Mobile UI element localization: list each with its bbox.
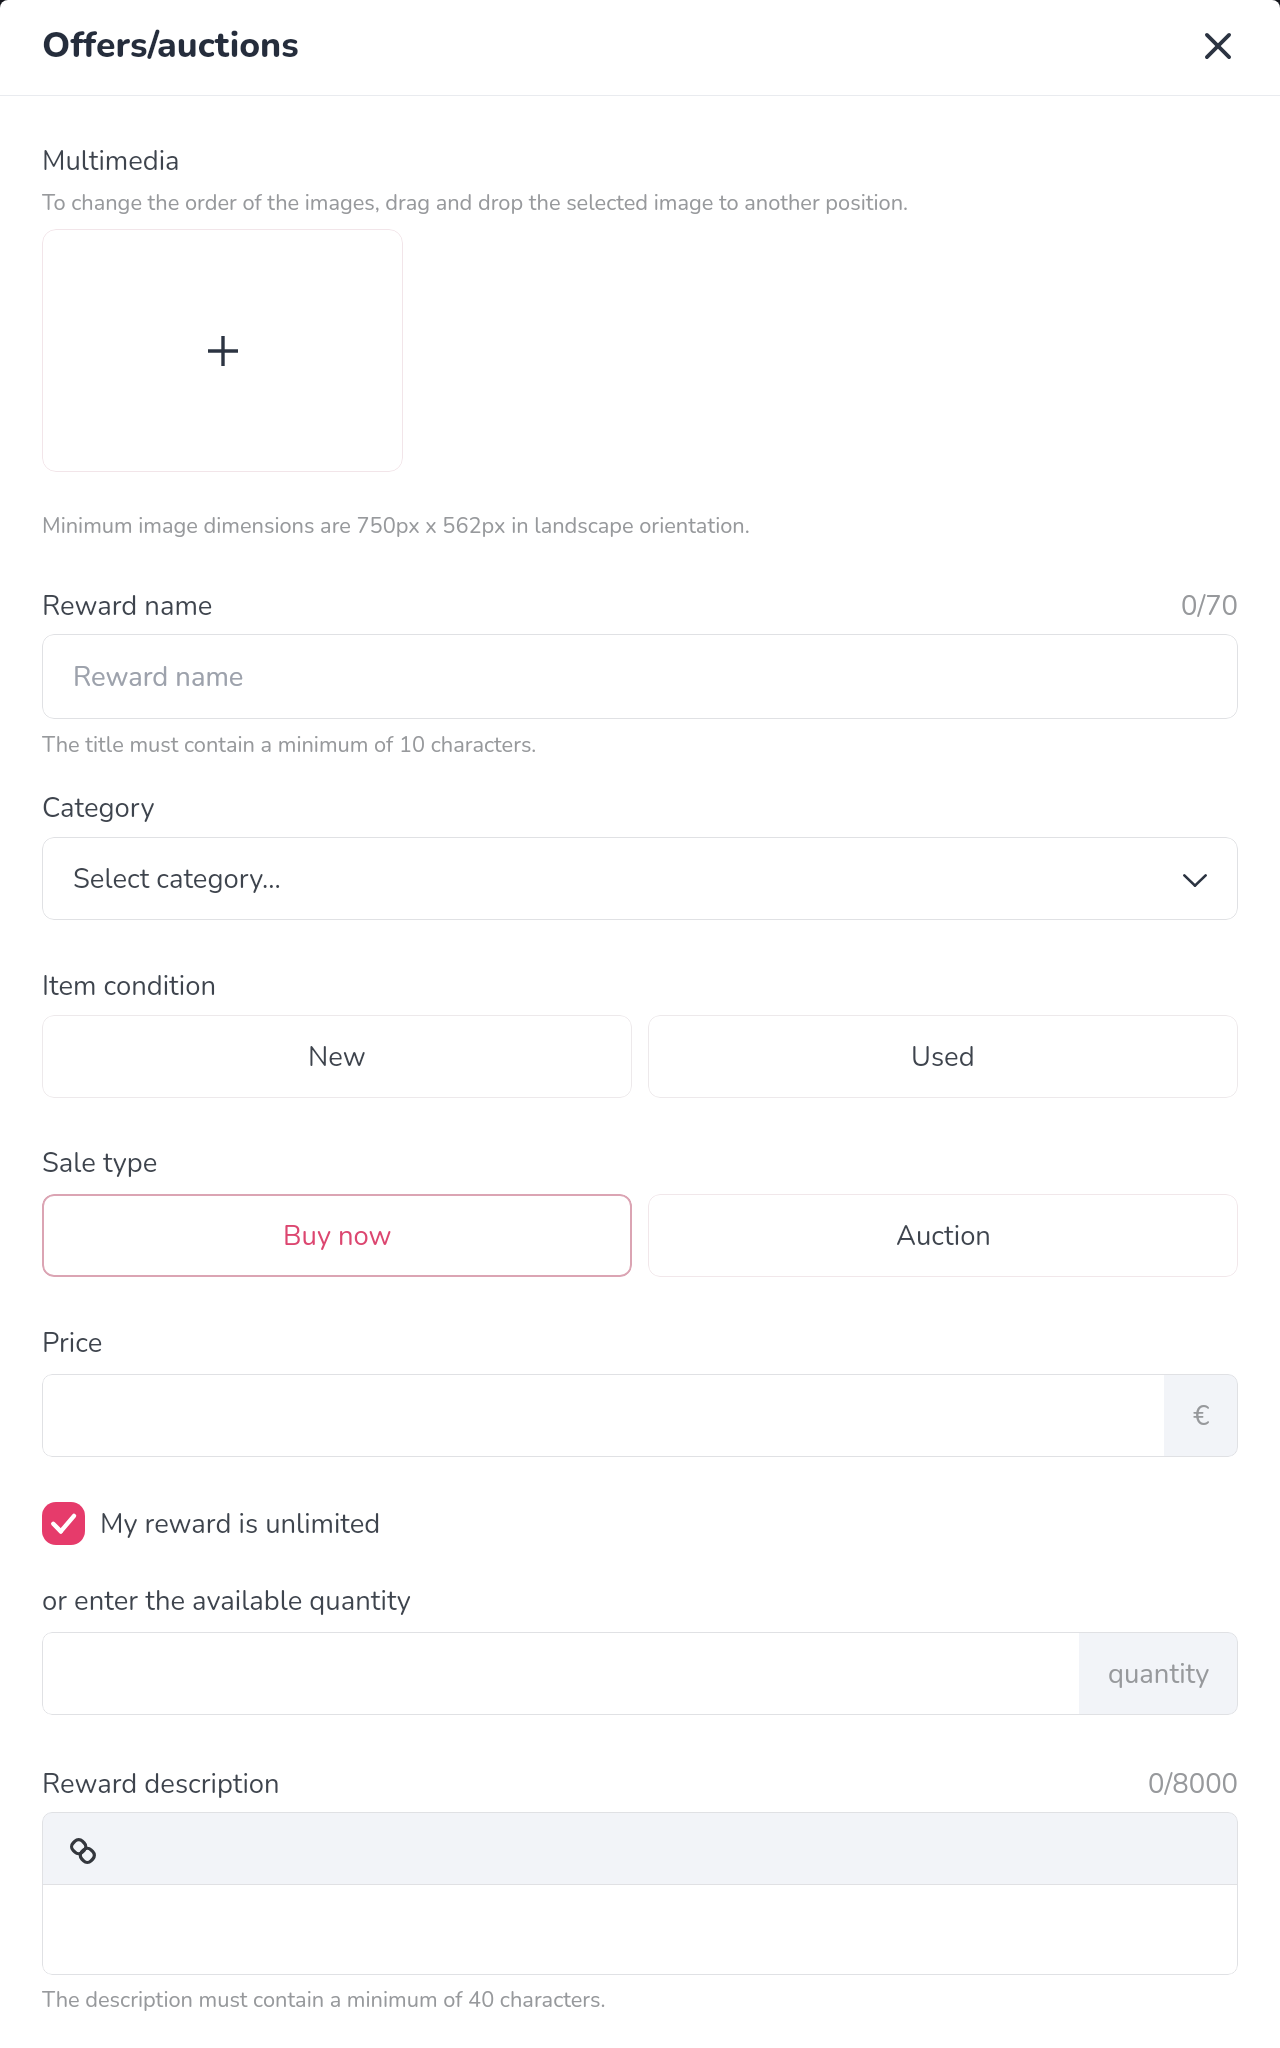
button[interactable] (42, 1885, 1238, 1975)
staticText: Buy now (283, 1217, 392, 1254)
staticText: Minimum image dimensions are 750px x 562… (42, 511, 750, 541)
staticText: 0/70 (42, 587, 1238, 624)
button[interactable]: Used (648, 1015, 1238, 1098)
staticText: Reward name (42, 587, 213, 624)
button[interactable]: Reward name (42, 634, 1238, 719)
staticText: Select category... (73, 860, 281, 897)
button[interactable]: Insert link (66, 1834, 100, 1868)
staticText: New (308, 1038, 366, 1075)
staticText: My reward is unlimited (100, 1505, 381, 1542)
button[interactable]: Close (1194, 21, 1242, 71)
button[interactable]: Select category (42, 837, 1238, 920)
button[interactable]: Add image (42, 229, 403, 472)
staticText: To change the order of the images, drag … (42, 188, 908, 218)
button[interactable]: My reward is unlimited (42, 1502, 381, 1545)
staticText: Category (42, 789, 155, 826)
staticText: Item condition (42, 967, 216, 1004)
button[interactable]: Auction (648, 1194, 1238, 1277)
staticText: The description must contain a minimum o… (42, 1985, 606, 2015)
staticText: Offers/auctions (42, 21, 299, 69)
button[interactable]: Buy now (42, 1194, 632, 1277)
staticText: Auction (896, 1217, 991, 1254)
staticText: Reward name (73, 658, 244, 695)
staticText: Sale type (42, 1144, 158, 1181)
button[interactable] (42, 1374, 1164, 1457)
staticText: 0/8000 (42, 1765, 1238, 1802)
staticText: quantity (1108, 1655, 1210, 1692)
staticText: or enter the available quantity (42, 1582, 411, 1619)
staticText: Reward description (42, 1765, 280, 1802)
staticText: Price (42, 1324, 103, 1361)
button[interactable] (42, 1632, 1079, 1715)
staticText: The title must contain a minimum of 10 c… (42, 730, 537, 760)
staticText: Multimedia (42, 142, 180, 179)
button[interactable]: New (42, 1015, 632, 1098)
staticText: Used (911, 1038, 975, 1075)
staticText: € (1193, 1397, 1210, 1434)
